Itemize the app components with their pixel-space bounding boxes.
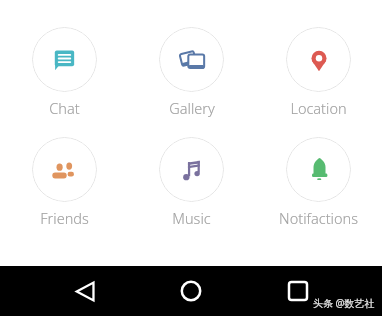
staticText: Chat [49,98,80,118]
button[interactable]: Back [64,270,106,312]
staticText: Notifactions [279,208,358,228]
button[interactable]: Home [170,270,212,312]
staticText: Gallery [169,98,215,118]
button[interactable]: Recent apps [277,270,319,312]
button[interactable]: Notifactions [255,137,382,228]
button[interactable]: Chat [0,27,128,118]
staticText: Location [290,98,347,118]
button[interactable]: Location [255,27,382,118]
staticText: Music [172,208,211,228]
staticText: Friends [40,208,89,228]
button[interactable]: Music [128,137,255,228]
button[interactable]: Friends [0,137,128,228]
button[interactable]: Gallery [128,27,255,118]
staticText: 头条 @数艺社 [313,296,375,310]
